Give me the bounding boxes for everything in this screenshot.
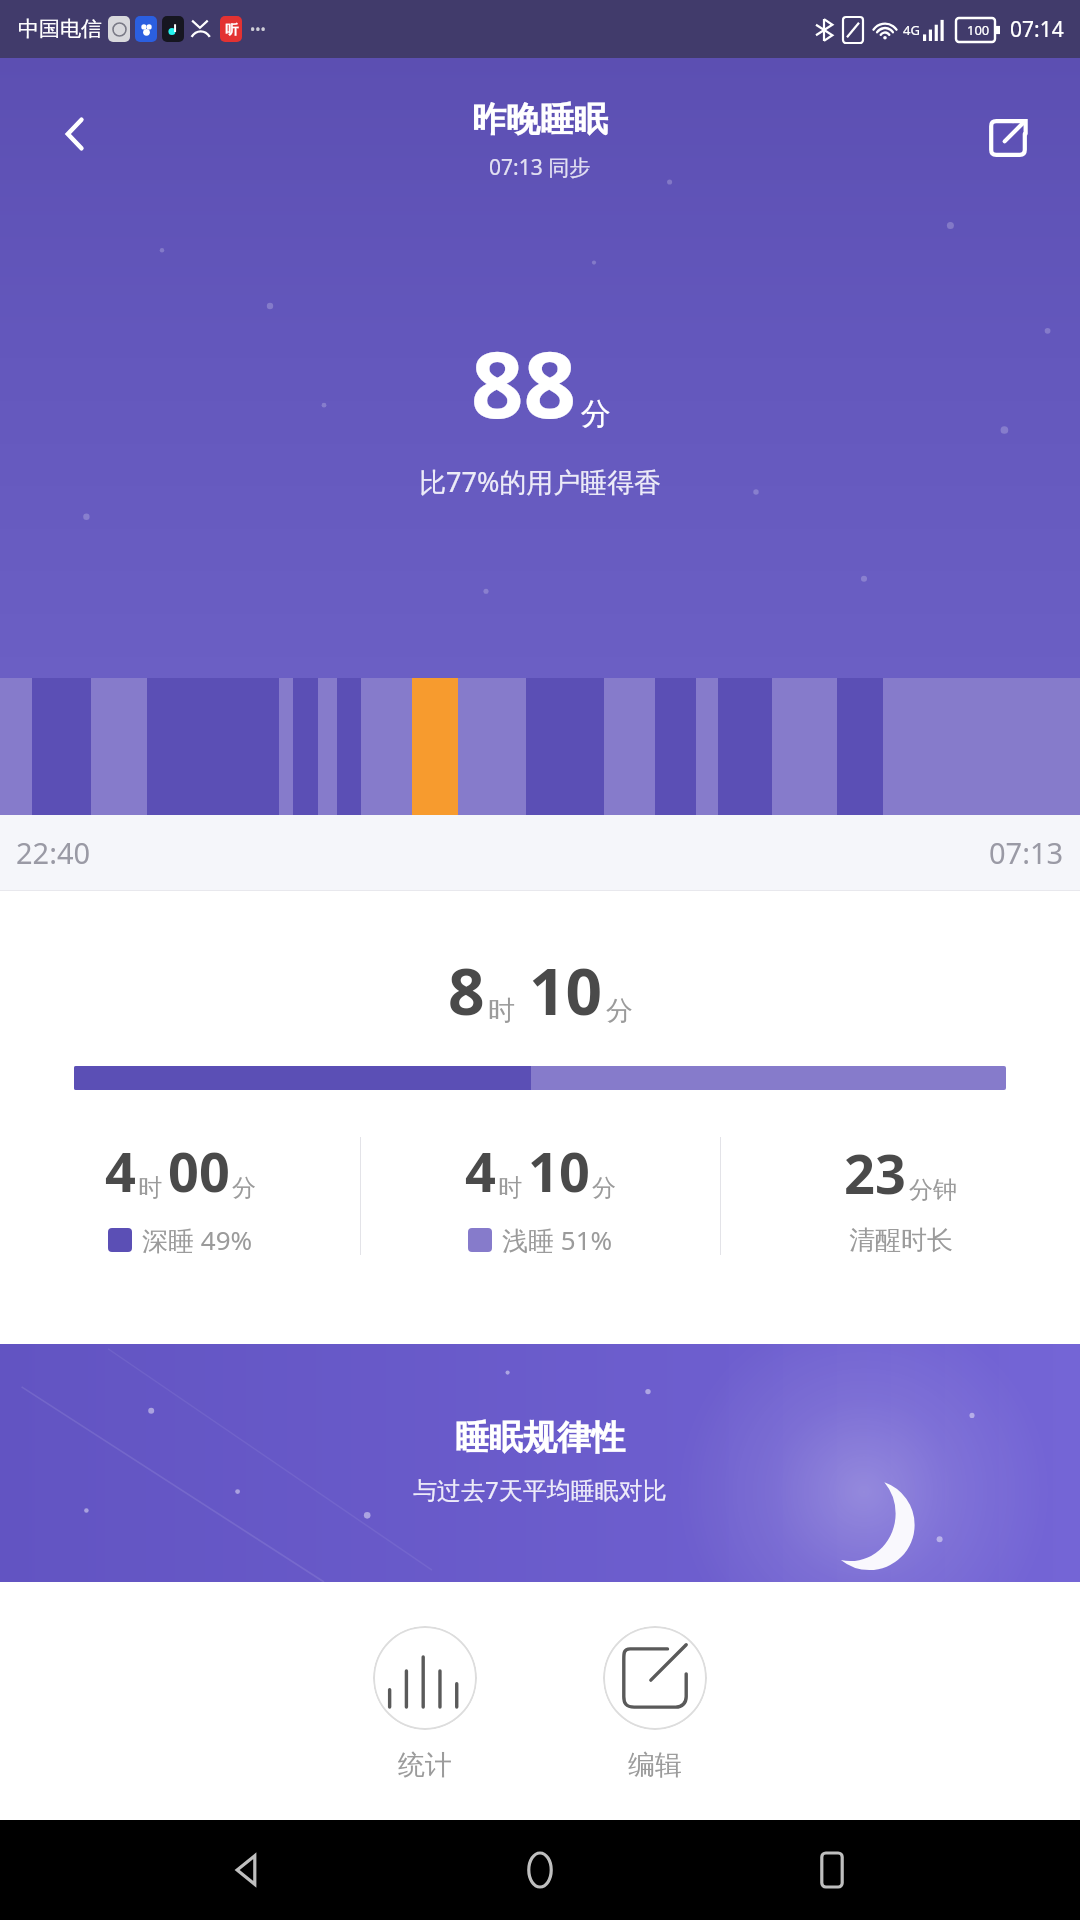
- staticText: 4G: [903, 21, 920, 39]
- staticText: 听: [225, 21, 238, 37]
- staticText: 分: [232, 1173, 256, 1203]
- staticText: 07:13: [989, 833, 1064, 872]
- staticText: 深睡 49%: [142, 1222, 253, 1258]
- staticText: 100: [967, 21, 990, 39]
- button[interactable]: Back: [204, 1826, 292, 1914]
- staticText: 中国电信: [18, 16, 102, 42]
- button[interactable]: Back: [40, 98, 112, 170]
- staticText: 10: [529, 947, 603, 1034]
- button[interactable]: Share: [972, 102, 1044, 174]
- staticText: 睡眠规律性: [455, 1416, 625, 1459]
- staticText: 分钟: [909, 1175, 957, 1205]
- staticText: 分: [606, 994, 633, 1028]
- staticText: •••: [250, 20, 266, 39]
- staticText: 07:13 同步: [489, 153, 591, 182]
- button[interactable]: Home: [496, 1826, 584, 1914]
- staticText: 07:14: [1010, 15, 1064, 44]
- staticText: 10: [528, 1134, 590, 1208]
- button[interactable]: 睡眠规律性: [0, 1344, 1080, 1582]
- button[interactable]: Statistics: [369, 1622, 481, 1786]
- button[interactable]: Edit: [599, 1622, 711, 1786]
- staticText: 编辑: [628, 1748, 682, 1782]
- staticText: 昨晚睡眠: [472, 98, 608, 141]
- staticText: 88: [471, 320, 577, 445]
- staticText: 4: [465, 1134, 496, 1208]
- staticText: 00: [168, 1134, 230, 1208]
- staticText: 时: [138, 1173, 162, 1203]
- staticText: 时: [488, 994, 515, 1028]
- staticText: 分: [592, 1173, 616, 1203]
- staticText: 4: [105, 1134, 136, 1208]
- staticText: 统计: [398, 1748, 452, 1782]
- staticText: 时: [498, 1173, 522, 1203]
- staticText: 比77%的用户睡得香: [419, 463, 662, 500]
- staticText: 8: [448, 947, 485, 1034]
- staticText: 23: [844, 1136, 906, 1210]
- button[interactable]: Recents: [788, 1826, 876, 1914]
- staticText: 浅睡 51%: [502, 1222, 613, 1258]
- staticText: 分: [581, 395, 611, 433]
- staticText: 清醒时长: [849, 1224, 953, 1257]
- staticText: 与过去7天平均睡眠对比: [413, 1473, 667, 1506]
- staticText: 22:40: [16, 833, 91, 872]
